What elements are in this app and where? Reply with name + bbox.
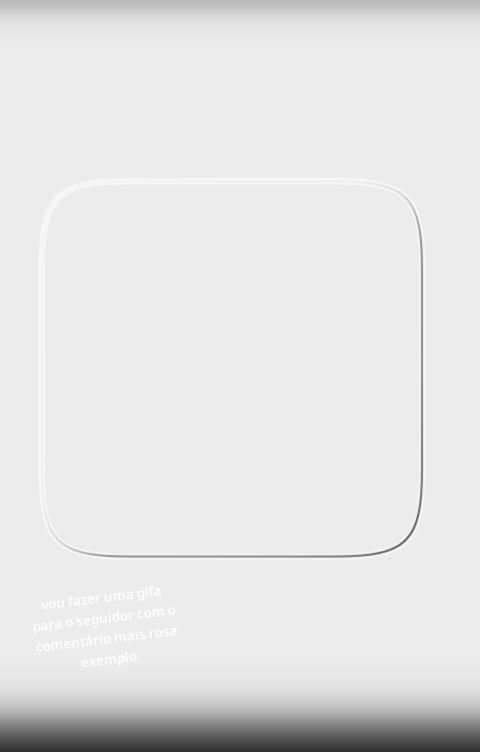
staticText: vou fazer uma gifa — [44, 588, 165, 606]
staticText: exemplo — [77, 650, 133, 668]
button[interactable]: vou fazer uma gifa — [33, 588, 177, 668]
staticText: para o seguidor com o — [33, 609, 177, 626]
staticText: comentário mais rosa — [33, 629, 176, 647]
button[interactable]: Media — [41, 180, 423, 557]
